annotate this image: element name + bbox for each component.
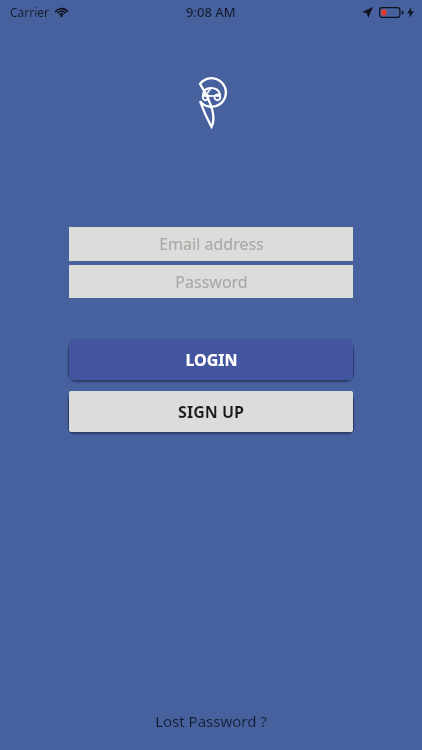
staticText: SIGN UP [178, 401, 244, 423]
staticText: LOGIN [185, 349, 238, 371]
other: Battery low [379, 7, 404, 18]
staticText: Email address [159, 233, 264, 255]
staticText: 9:08 AM [186, 3, 236, 21]
button[interactable]: Lost Password ? [141, 706, 281, 736]
staticText: Password [175, 271, 248, 293]
button[interactable]: Password [69, 265, 353, 298]
button[interactable]: Email address [69, 227, 353, 261]
button[interactable]: LOGIN [69, 339, 353, 380]
other: App logo: car location pin [196, 77, 227, 128]
button[interactable]: SIGN UP [69, 391, 353, 432]
other: Location active [362, 7, 373, 18]
other: Wi-Fi signal [55, 7, 68, 17]
staticText: Lost Password ? [155, 711, 267, 731]
staticText: Carrier [10, 4, 50, 20]
